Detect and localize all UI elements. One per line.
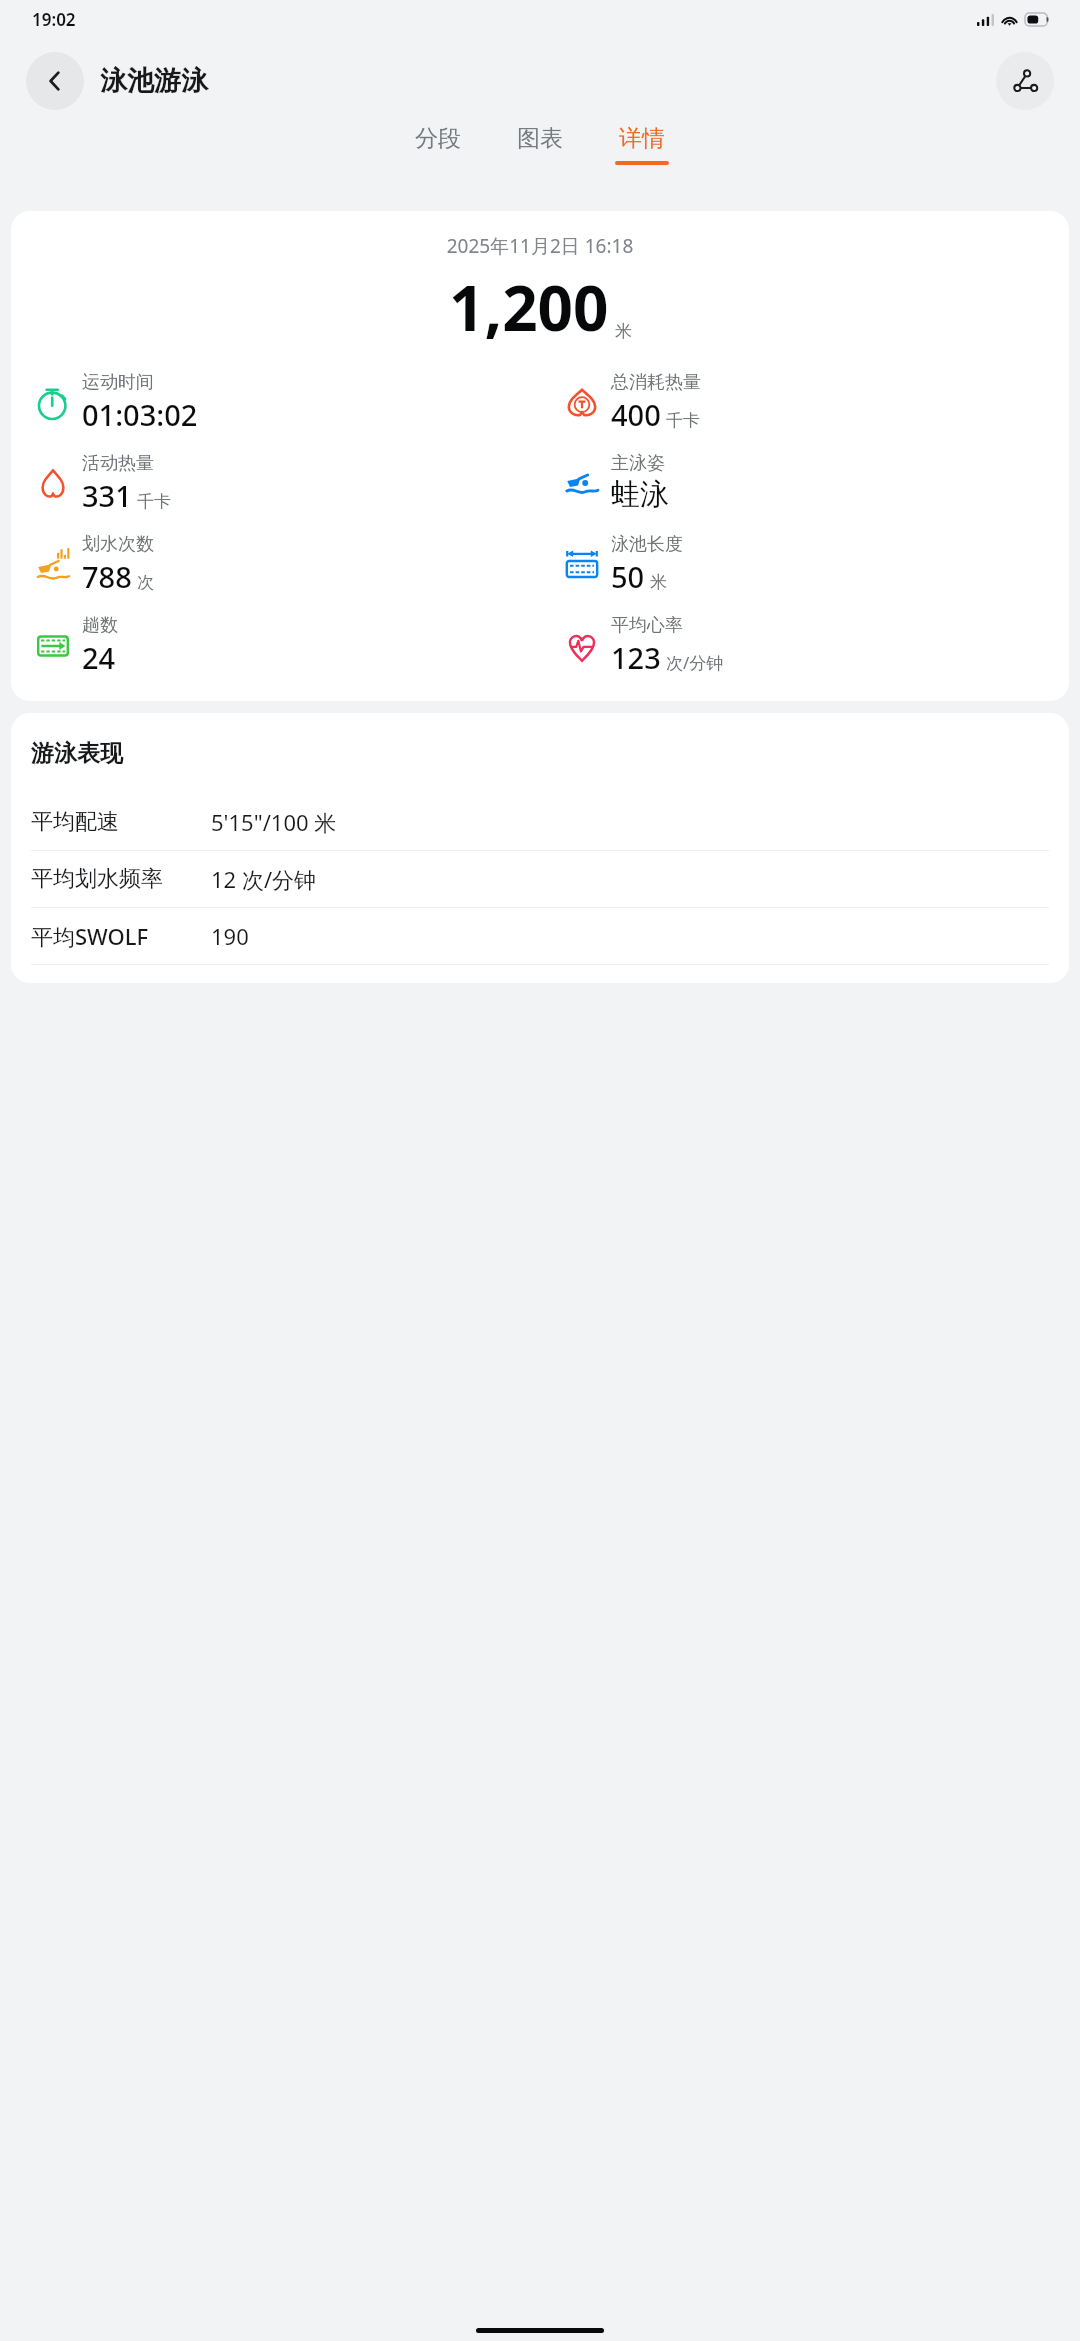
staticText: 划水次数 <box>82 533 154 556</box>
button[interactable]: 划水次数 <box>33 533 540 596</box>
button[interactable]: Share <box>996 52 1054 110</box>
button[interactable]: 平均心率 <box>562 614 1069 677</box>
staticText: 24 <box>82 638 116 677</box>
staticText: 19:02 <box>32 8 76 31</box>
staticText: 分段 <box>415 124 461 153</box>
button[interactable]: 图表 <box>507 124 573 165</box>
staticText: 趟数 <box>82 614 118 637</box>
staticText: 01:03:02 <box>82 395 198 434</box>
staticText: 次 <box>137 572 154 593</box>
button[interactable]: 详情 <box>609 124 675 165</box>
staticText: 泳池游泳 <box>100 64 208 98</box>
staticText: 平均划水频率 <box>31 865 211 893</box>
staticText: 千卡 <box>666 410 700 431</box>
staticText: 平均配速 <box>31 808 211 836</box>
staticText: 千卡 <box>137 491 171 512</box>
staticText: 米 <box>650 572 667 593</box>
staticText: 活动热量 <box>82 452 154 475</box>
staticText: 泳池长度 <box>611 533 683 556</box>
button[interactable]: 总消耗热量 <box>562 371 1069 434</box>
staticText: 平均心率 <box>611 614 683 637</box>
staticText: 总消耗热量 <box>611 371 701 394</box>
staticText: 190 <box>211 921 249 951</box>
staticText: 123 <box>611 638 661 677</box>
button[interactable]: 平均划水频率 <box>31 851 1049 907</box>
button[interactable]: 运动时间 <box>33 371 540 434</box>
staticText: 米 <box>615 321 632 342</box>
staticText: 12 次/分钟 <box>211 864 317 894</box>
staticText: 蛙泳 <box>611 476 669 513</box>
staticText: 50 <box>611 557 645 596</box>
staticText: 次/分钟 <box>666 651 724 674</box>
staticText: 详情 <box>619 124 665 153</box>
staticText: 331 <box>82 476 132 515</box>
button[interactable]: 分段 <box>405 124 471 165</box>
button[interactable]: 平均配速 <box>31 794 1049 850</box>
button[interactable]: 主泳姿 <box>562 452 1069 513</box>
button[interactable]: 泳池长度 <box>562 533 1069 596</box>
staticText: 5'15"/100 米 <box>211 807 337 837</box>
button[interactable]: 平均SWOLF <box>31 908 1049 964</box>
staticText: 主泳姿 <box>611 452 665 475</box>
button[interactable]: 活动热量 <box>33 452 540 515</box>
staticText: 平均SWOLF <box>31 921 211 951</box>
staticText: 400 <box>611 395 661 434</box>
staticText: 游泳表现 <box>31 739 123 768</box>
staticText: 运动时间 <box>82 371 154 394</box>
staticText: 图表 <box>517 124 563 153</box>
staticText: 1,200 <box>449 265 609 349</box>
staticText: 2025年11月2日 16:18 <box>11 233 1069 259</box>
button[interactable]: 趟数 <box>33 614 540 677</box>
staticText: 788 <box>82 557 132 596</box>
button[interactable]: Back <box>26 52 84 110</box>
